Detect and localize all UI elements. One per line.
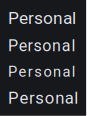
staticText: l — [74, 88, 78, 108]
staticText: s — [35, 88, 44, 108]
staticText: l — [72, 63, 76, 80]
staticText: n — [53, 63, 61, 80]
staticText: s — [34, 63, 42, 80]
staticText: e — [18, 63, 26, 80]
staticText: e — [19, 88, 28, 108]
staticText: P — [8, 36, 18, 55]
staticText: s — [33, 36, 41, 55]
staticText: r — [28, 63, 33, 80]
staticText: o — [44, 63, 52, 80]
staticText: r — [29, 88, 35, 108]
staticText: a — [62, 63, 70, 80]
staticText: a — [65, 88, 74, 108]
staticText: o — [42, 36, 51, 55]
staticText: n — [52, 36, 61, 55]
staticText: a — [62, 36, 71, 55]
staticText: r — [28, 36, 33, 55]
staticText: n — [55, 88, 64, 108]
staticText: P — [8, 88, 19, 108]
staticText: o — [45, 88, 55, 108]
staticText: e — [19, 36, 27, 55]
staticText: l — [72, 36, 76, 55]
staticText: Personal — [8, 8, 76, 28]
staticText: P — [8, 63, 17, 80]
